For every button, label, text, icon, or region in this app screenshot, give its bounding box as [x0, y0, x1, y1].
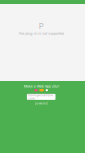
button[interactable]: hello@example.com: [27, 94, 55, 100]
staticText: hello@example.com: [28, 93, 54, 100]
staticText: powered: [35, 102, 48, 105]
staticText: P: [39, 21, 44, 31]
staticText: The plug-in is not supported: [18, 31, 64, 36]
staticText: Make a Web App 2021: [24, 84, 59, 88]
